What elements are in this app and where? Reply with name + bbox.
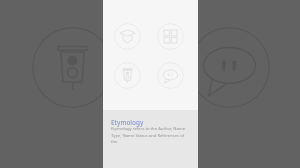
button[interactable]: Next category <box>189 27 270 108</box>
staticText: Etymology <box>111 118 144 127</box>
button[interactable]: Etymology <box>157 62 184 89</box>
button[interactable]: Previous category <box>32 27 113 108</box>
button[interactable]: Classification <box>157 23 184 50</box>
staticText: Etymology refers to the Author, Name Typ… <box>111 126 191 144</box>
button[interactable]: Specimens <box>114 62 141 89</box>
button[interactable]: Taxonomy <box>114 23 141 50</box>
